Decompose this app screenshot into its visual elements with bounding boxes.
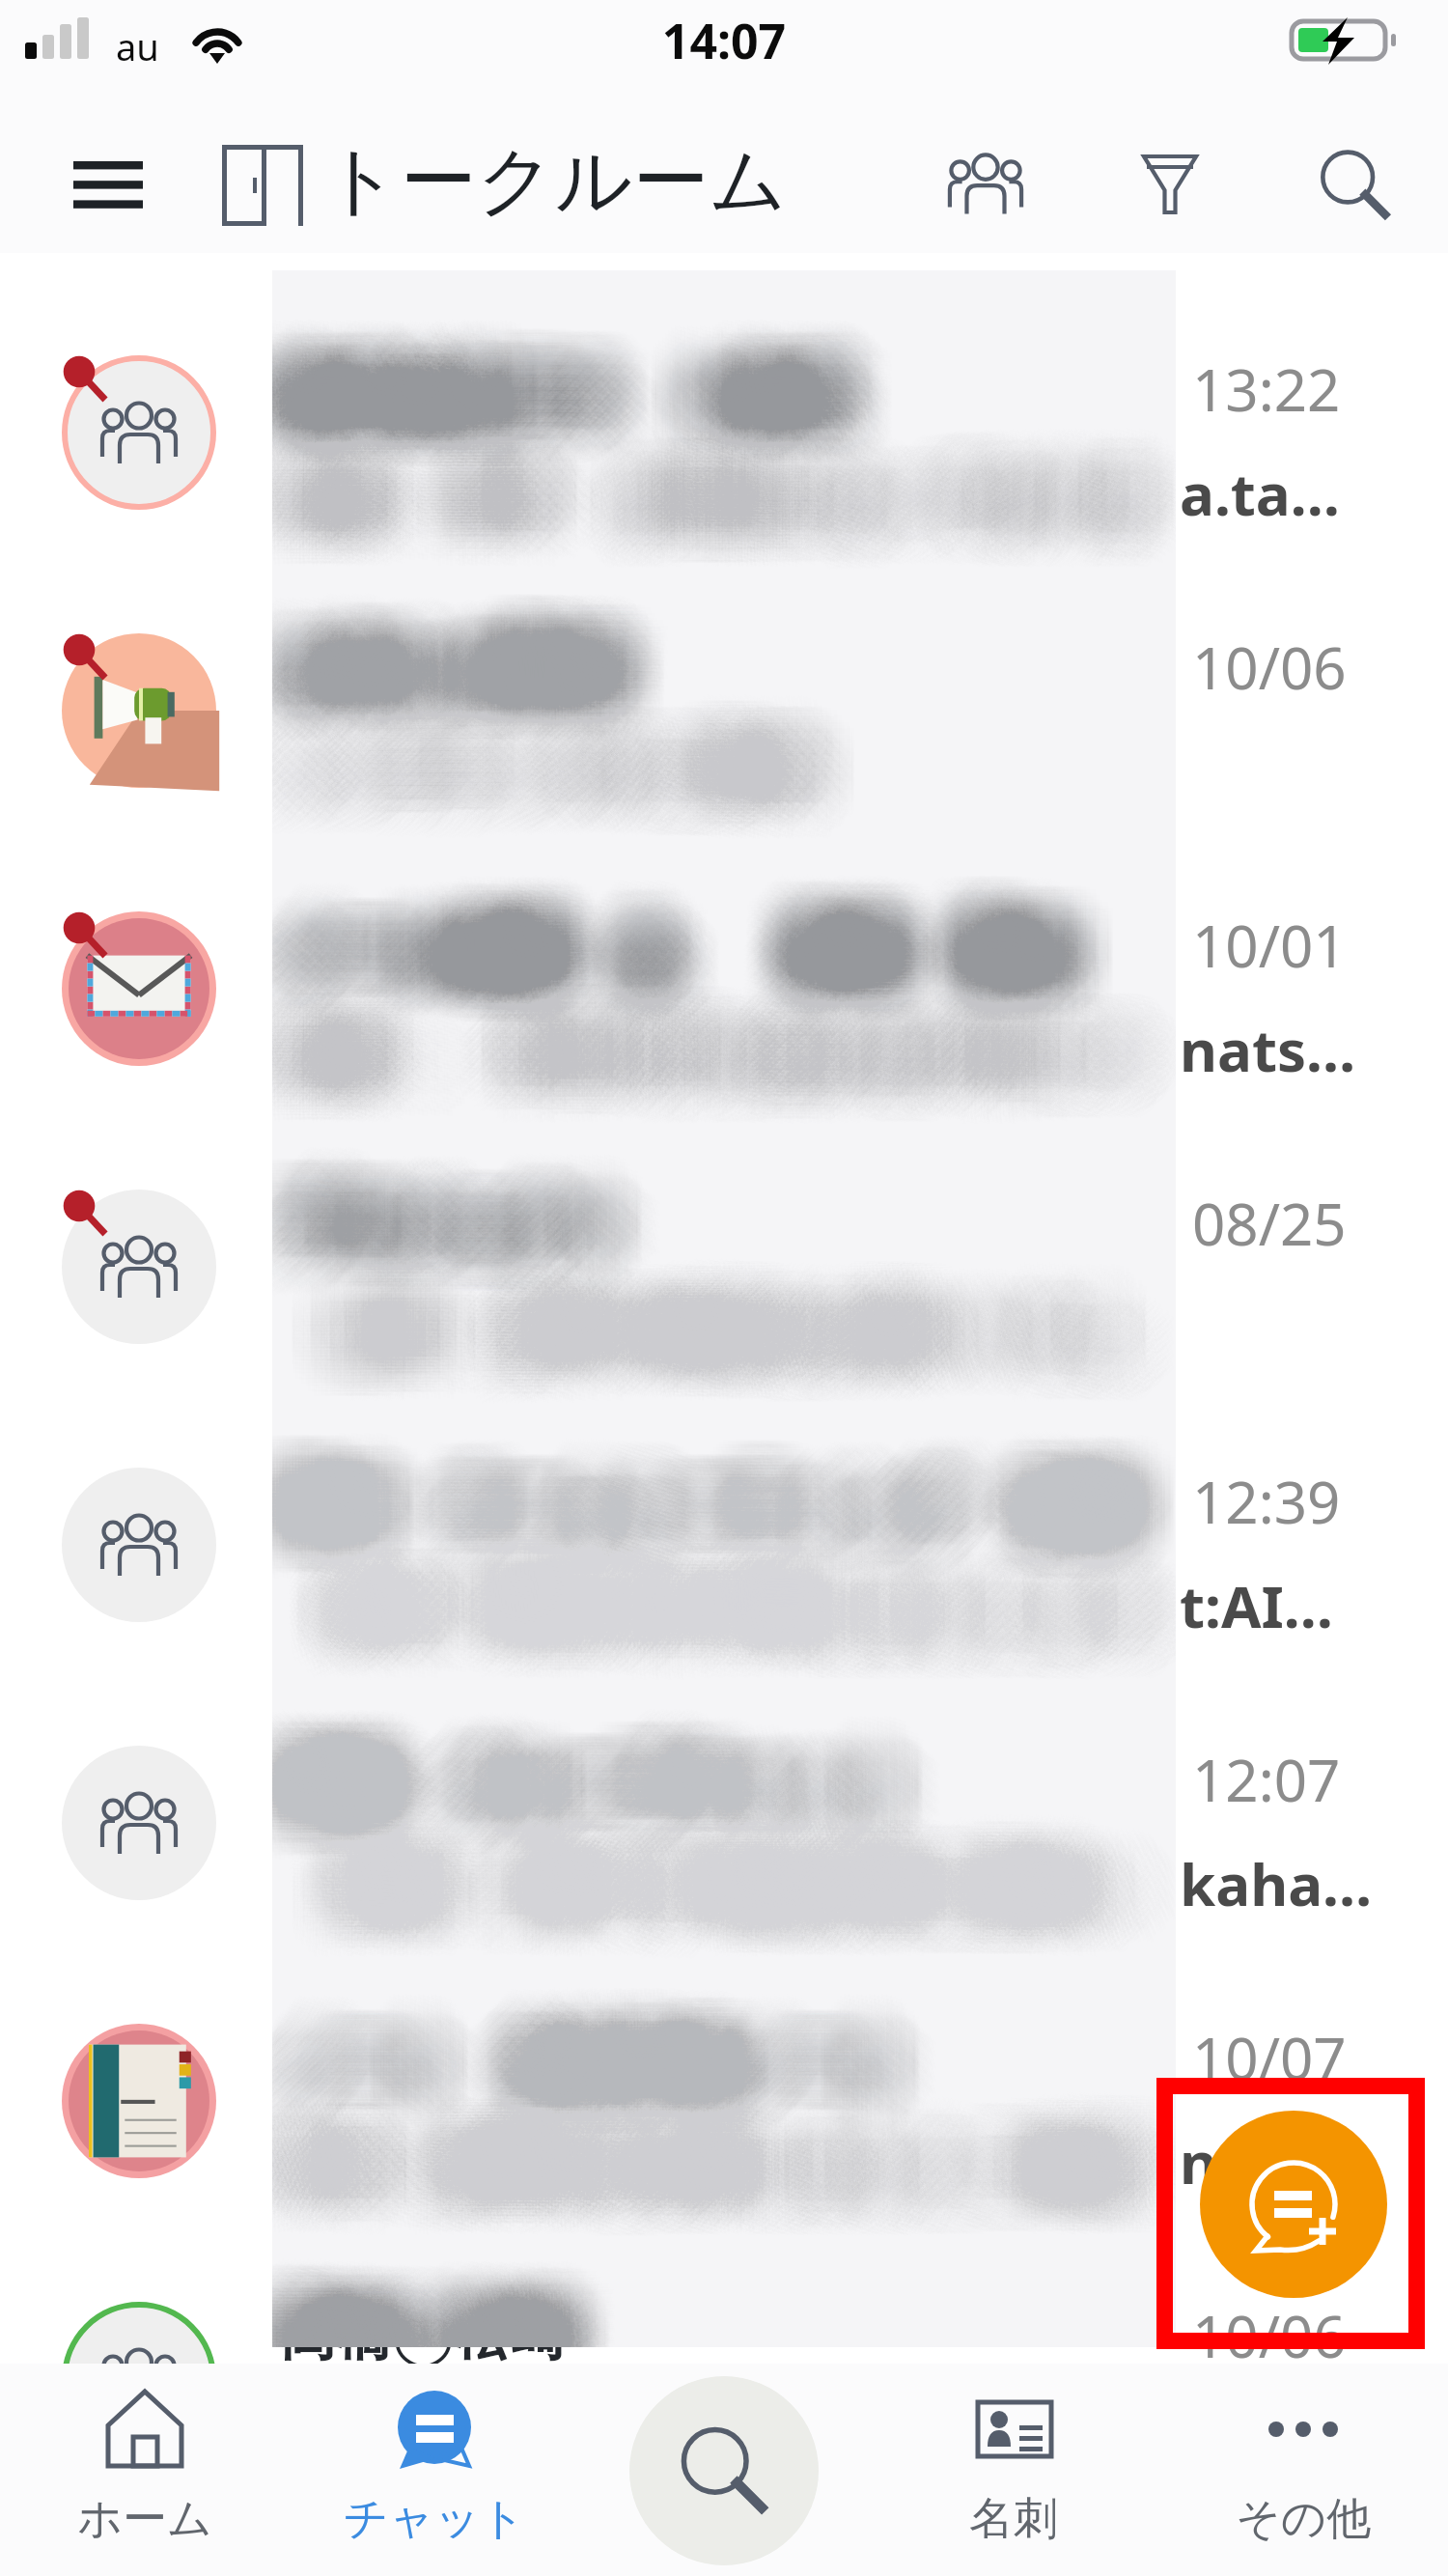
staticText: お知らせ配信 xyxy=(323,640,664,711)
staticText: 田中 チームミーティング 定例 共有 xyxy=(312,1491,1176,1567)
staticText: ノート 全社共有ノート xyxy=(303,1986,925,2062)
staticText: 山田 ：資料の確認をお願いいたします 次回の日程について xyxy=(318,1259,1176,1330)
staticText: メンテナンスのご案内 xyxy=(272,721,768,787)
staticText: 高橋◯松崎 xyxy=(298,2309,585,2347)
staticText: 佐藤 ：青木 お世話になっております資料を送付いたします xyxy=(319,430,1176,501)
staticText: メール連携 あ 新着 通知 ◯ xyxy=(301,865,1176,941)
staticText: 高橋：了解です 確認次第ご連絡いたします 引き続きお願い xyxy=(272,1885,1170,1956)
staticText: メール連携 あ 新着 通知 ◯ xyxy=(272,881,1139,957)
staticText: 鈴木：明日の件 承知しました よろしくお願いします xyxy=(311,1564,1176,1636)
staticText: メンテナンスのご案内 xyxy=(280,690,812,756)
staticText: 佐藤 ： 本日の打ち合わせの件につきましてご連絡いたします xyxy=(308,1052,1176,1124)
button[interactable]: Rooms xyxy=(207,129,307,230)
staticText: 株式会社テス ト株式 xyxy=(273,362,838,438)
staticText: 営業 グループチャット xyxy=(306,1718,932,1794)
staticText: 鈴木：明日の件 承知しました よろしくお願いします xyxy=(272,1540,1168,1611)
staticText: プロジェクト xyxy=(305,1144,650,1215)
button[interactable]: Menu xyxy=(54,143,162,230)
staticText: 佐藤 ： 本日の打ち合わせの件につきましてご連絡いたします xyxy=(272,1031,1171,1103)
staticText: メール連携 あ 新着 通知 ◯ xyxy=(293,909,1176,985)
staticText: 鈴木：明日の件 承知しました よろしくお願いします xyxy=(272,1609,1149,1680)
staticText: 営業 グループチャット xyxy=(320,1734,946,1810)
staticText: プロジェクト xyxy=(272,1191,591,1262)
staticText: 佐藤 ：青木 お世話になっております資料を送付いたします xyxy=(272,477,1152,548)
staticText: プロジェクト xyxy=(280,1169,625,1240)
staticText: プロジェクト xyxy=(319,1223,663,1294)
staticText: 佐藤 ： 本日の打ち合わせの件につきましてご連絡いたします xyxy=(326,1043,1176,1114)
button[interactable]: Search xyxy=(1294,124,1409,239)
staticText: 営業 グループチャット xyxy=(303,1782,929,1859)
button[interactable]: 12:39 xyxy=(0,1406,1448,1684)
staticText: 山田 ：資料の確認をお願いいたします 次回の日程について xyxy=(272,1337,1168,1409)
staticText: 高橋：了解です 確認次第ご連絡いたします 引き続きお願い xyxy=(272,1825,1150,1896)
staticText: 営業 グループチャット xyxy=(272,1767,882,1843)
staticText: 高橋：了解です 確認次第ご連絡いたします 引き続きお願い xyxy=(272,1882,1172,1953)
staticText: お知らせ配信 xyxy=(272,615,576,686)
staticText: メンテナンスのご案内 xyxy=(287,734,819,799)
staticText: ノート 全社共有ノート xyxy=(280,2029,902,2105)
staticText: メール連携 あ 新着 通知 ◯ xyxy=(272,923,1170,999)
staticText: 高橋◯松崎 xyxy=(280,2269,567,2339)
staticText: メンテナンスのご案内 xyxy=(272,727,795,793)
staticText: 鈴木：明日の件 承知しました よろしくお願いします xyxy=(272,1539,1152,1610)
staticText: 営業 グループチャット xyxy=(272,1743,894,1819)
staticText: 佐藤 ： 本日の打ち合わせの件につきましてご連絡いたします xyxy=(272,1016,1150,1087)
button[interactable]: 12:07 xyxy=(0,1684,1448,1962)
staticText: 鈴木：明日の件 承知しました よろしくお願いします xyxy=(272,1602,1152,1673)
button[interactable]: New chat xyxy=(1200,2111,1387,2298)
staticText: 高橋◯松崎 xyxy=(272,2282,554,2347)
button[interactable]: Search xyxy=(579,2364,869,2576)
staticText: 佐藤 ： 本日の打ち合わせの件につきましてご連絡いたします xyxy=(272,1040,1161,1111)
staticText: メンテナンスのご案内 xyxy=(314,765,846,830)
staticText: お知らせ配信 xyxy=(272,606,577,677)
staticText: 高橋◯松崎 xyxy=(315,2297,601,2347)
staticText: メンテナンスのご案内 xyxy=(301,765,833,830)
staticText: 松本：議事録を更新しました ご確認をお願いします xyxy=(311,2083,1176,2154)
button[interactable]: 13:22 xyxy=(0,294,1448,572)
staticText: 佐藤 ： 本日の打ち合わせの件につきましてご連絡いたします xyxy=(306,1060,1176,1132)
staticText: 鈴木：明日の件 承知しました よろしくお願いします xyxy=(272,1543,1140,1614)
staticText: メール連携 あ 新着 通知 ◯ xyxy=(312,922,1176,998)
staticText: お知らせ配信 xyxy=(296,635,637,706)
button[interactable]: 08/25 xyxy=(0,1128,1448,1406)
staticText: 佐藤 ： 本日の打ち合わせの件につきましてご連絡いたします xyxy=(281,1011,1176,1082)
staticText: 佐藤 ： 本日の打ち合わせの件につきましてご連絡いたします xyxy=(281,1048,1176,1119)
staticText: 山田 ：資料の確認をお願いいたします 次回の日程について xyxy=(289,1246,1176,1317)
staticText: メンテナンスのご案内 xyxy=(272,706,784,771)
button[interactable]: チャット xyxy=(290,2364,579,2576)
staticText: お知らせ配信 xyxy=(272,680,609,750)
staticText: メール連携 あ 新着 通知 ◯ xyxy=(272,865,1167,941)
button[interactable]: 10/06 xyxy=(0,2240,1448,2518)
staticText: 高橋◯松崎 xyxy=(279,2313,566,2347)
staticText: メール連携 あ 新着 通知 ◯ xyxy=(272,898,1145,974)
button[interactable]: 10/07 xyxy=(0,1962,1448,2240)
staticText: 株式会社テス ト株式 xyxy=(272,312,825,388)
staticText: 営業 グループチャット xyxy=(281,1743,906,1819)
staticText: メール連携 あ 新着 通知 ◯ xyxy=(272,903,1167,979)
staticText: 営業 グループチャット xyxy=(308,1747,933,1823)
staticText: 山田 ：資料の確認をお願いいたします 次回の日程について xyxy=(272,1313,1172,1385)
staticText: 松本：議事録を更新しました ご確認をお願いします xyxy=(276,2142,1176,2214)
button[interactable]: ホーム xyxy=(0,2364,290,2576)
button[interactable]: 名刺 xyxy=(869,2364,1158,2576)
staticText: 佐藤 ： 本日の打ち合わせの件につきましてご連絡いたします xyxy=(303,1000,1176,1072)
staticText: 松本：議事録を更新しました ご確認をお願いします xyxy=(272,2125,1157,2197)
staticText: 山田 ：資料の確認をお願いいたします 次回の日程について xyxy=(272,1274,1143,1346)
button[interactable]: Filter xyxy=(1114,131,1226,238)
staticText: 高橋：了解です 確認次第ご連絡いたします 引き続きお願い xyxy=(272,1890,1171,1962)
staticText: 高橋：了解です 確認次第ご連絡いたします 引き続きお願い xyxy=(286,1867,1176,1939)
staticText: 佐藤 ：青木 お世話になっております資料を送付いたします xyxy=(302,503,1176,574)
staticText: 山田 ：資料の確認をお願いいたします 次回の日程について xyxy=(272,1293,1174,1364)
button[interactable]: 10/06 xyxy=(0,572,1448,850)
staticText: プロジェクト xyxy=(314,1181,658,1251)
staticText: 山田 ：資料の確認をお願いいたします 次回の日程について xyxy=(301,1283,1176,1355)
staticText: 株式会社テス ト株式 xyxy=(272,320,836,396)
button[interactable]: その他 xyxy=(1158,2364,1448,2576)
staticText: 鈴木：明日の件 承知しました よろしくお願いします xyxy=(272,1530,1165,1602)
staticText: 田中 チームミーティング 定例 共有 xyxy=(272,1492,1170,1568)
staticText: プロジェクト xyxy=(272,1179,579,1249)
staticText: メール連携 あ 新着 通知 ◯ xyxy=(272,897,1140,973)
button[interactable]: 10/01 xyxy=(0,850,1448,1128)
staticText: 佐藤 ：青木 お世話になっております資料を送付いたします xyxy=(272,444,1157,516)
button[interactable]: Members xyxy=(918,129,1034,230)
